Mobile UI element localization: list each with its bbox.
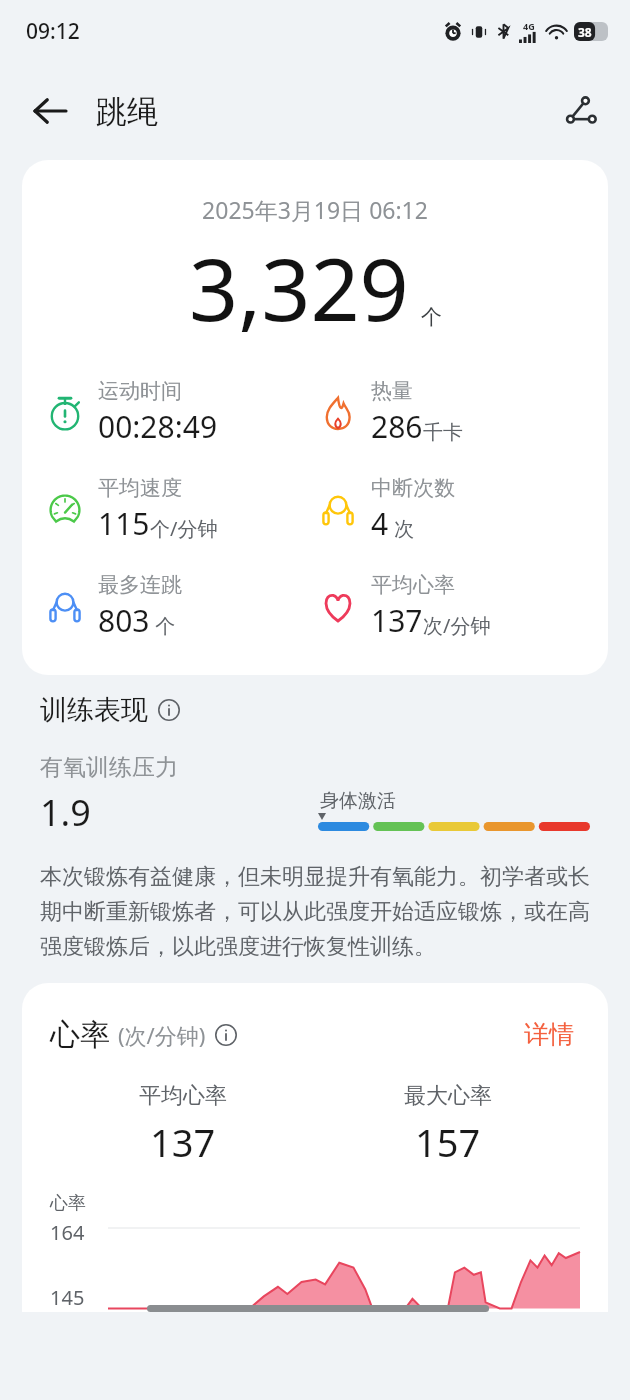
staticText: 115 [98, 503, 150, 544]
staticText: 热量 [371, 378, 413, 404]
staticText: 个/分钟 [150, 515, 218, 542]
staticText: 跳绳 [96, 92, 158, 131]
staticText: 00:28:49 [98, 406, 218, 447]
staticText: 次/分钟 [423, 612, 491, 639]
button[interactable]: Share [552, 83, 608, 139]
staticText: 最多连跳 [98, 572, 182, 598]
button[interactable]: 2025年3月19日 06:12 [22, 160, 608, 675]
staticText: 137 [371, 600, 423, 641]
staticText: 09:12 [26, 17, 80, 46]
staticText: 38 [578, 24, 592, 40]
staticText: 详情 [524, 1019, 574, 1050]
staticText: 4 [371, 503, 389, 544]
staticText: 有氧训练压力 [40, 753, 178, 782]
staticText: 身体激活 [320, 789, 396, 813]
staticText: 164 [50, 1219, 85, 1246]
staticText: 平均心率 [139, 1082, 227, 1110]
staticText: 1.9 [40, 788, 91, 837]
staticText: 最大心率 [404, 1082, 492, 1110]
staticText: 145 [50, 1284, 85, 1311]
staticText: 157 [415, 1116, 481, 1168]
button[interactable]: 训练表现 [40, 693, 180, 727]
staticText: 平均心率 [371, 572, 455, 598]
staticText: 个 [421, 304, 442, 330]
staticText: 心率 [50, 1016, 110, 1054]
staticText: 803 [98, 600, 150, 641]
staticText: 137 [150, 1116, 216, 1168]
staticText: 个 [150, 612, 176, 639]
staticText: 3,329 [189, 229, 409, 346]
staticText: 2025年3月19日 06:12 [22, 194, 608, 225]
staticText: 本次锻炼有益健康，但未明显提升有氧能力。初学者或长期中断重新锻炼者，可以从此强度… [40, 863, 590, 961]
button[interactable]: Back [22, 83, 78, 139]
staticText: 平均速度 [98, 475, 182, 501]
staticText: 286 [371, 406, 423, 447]
staticText: 运动时间 [98, 378, 182, 404]
staticText: 中断次数 [371, 475, 455, 501]
staticText: 千卡 [423, 420, 463, 445]
button[interactable]: 详情 [518, 1013, 580, 1056]
staticText: 4G [523, 20, 535, 32]
staticText: 心率 [50, 1192, 86, 1215]
staticText: 次 [389, 515, 415, 542]
staticText: (次/分钟) [118, 1020, 206, 1050]
staticText: 训练表现 [40, 693, 148, 727]
